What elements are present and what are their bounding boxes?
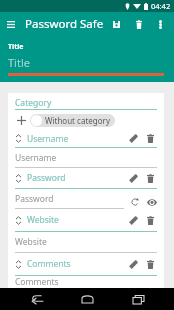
staticText: Website <box>15 236 47 248</box>
button[interactable]: Recent apps <box>124 288 152 310</box>
staticText: Username <box>27 133 69 145</box>
staticText: Comments <box>27 258 71 270</box>
button[interactable]: Home <box>73 288 101 310</box>
button[interactable]: Save <box>107 13 125 35</box>
staticText: Website <box>27 214 59 226</box>
staticText: Password <box>27 172 66 184</box>
staticText: Title <box>8 42 24 52</box>
button[interactable]: Edit Website <box>125 209 141 231</box>
button[interactable]: Edit Username <box>125 130 141 147</box>
button[interactable]: Generate password <box>124 189 140 209</box>
button[interactable]: Menu <box>7 14 15 34</box>
button[interactable]: Show password <box>140 189 157 209</box>
button[interactable]: Edit Comments <box>125 253 141 275</box>
button[interactable]: Edit Password <box>125 168 141 188</box>
staticText: Comments <box>15 276 59 288</box>
button[interactable]: Back <box>23 288 51 310</box>
staticText: 04:42 <box>151 1 171 11</box>
staticText: Password Safe <box>25 16 104 32</box>
staticText: Username <box>15 152 57 164</box>
staticText: Without category <box>45 115 110 126</box>
button[interactable]: Delete <box>131 13 147 35</box>
button[interactable]: Delete Password <box>143 168 157 188</box>
button[interactable]: Delete Website <box>143 209 157 231</box>
button[interactable]: Add category <box>15 114 28 127</box>
staticText: Password <box>15 193 54 205</box>
button[interactable]: Without category <box>30 114 115 127</box>
button[interactable]: Delete Comments <box>143 253 157 275</box>
staticText: Category <box>15 97 52 109</box>
staticText: Title <box>8 55 30 70</box>
button[interactable]: More options <box>153 13 167 35</box>
button[interactable]: Delete Username <box>143 130 157 147</box>
